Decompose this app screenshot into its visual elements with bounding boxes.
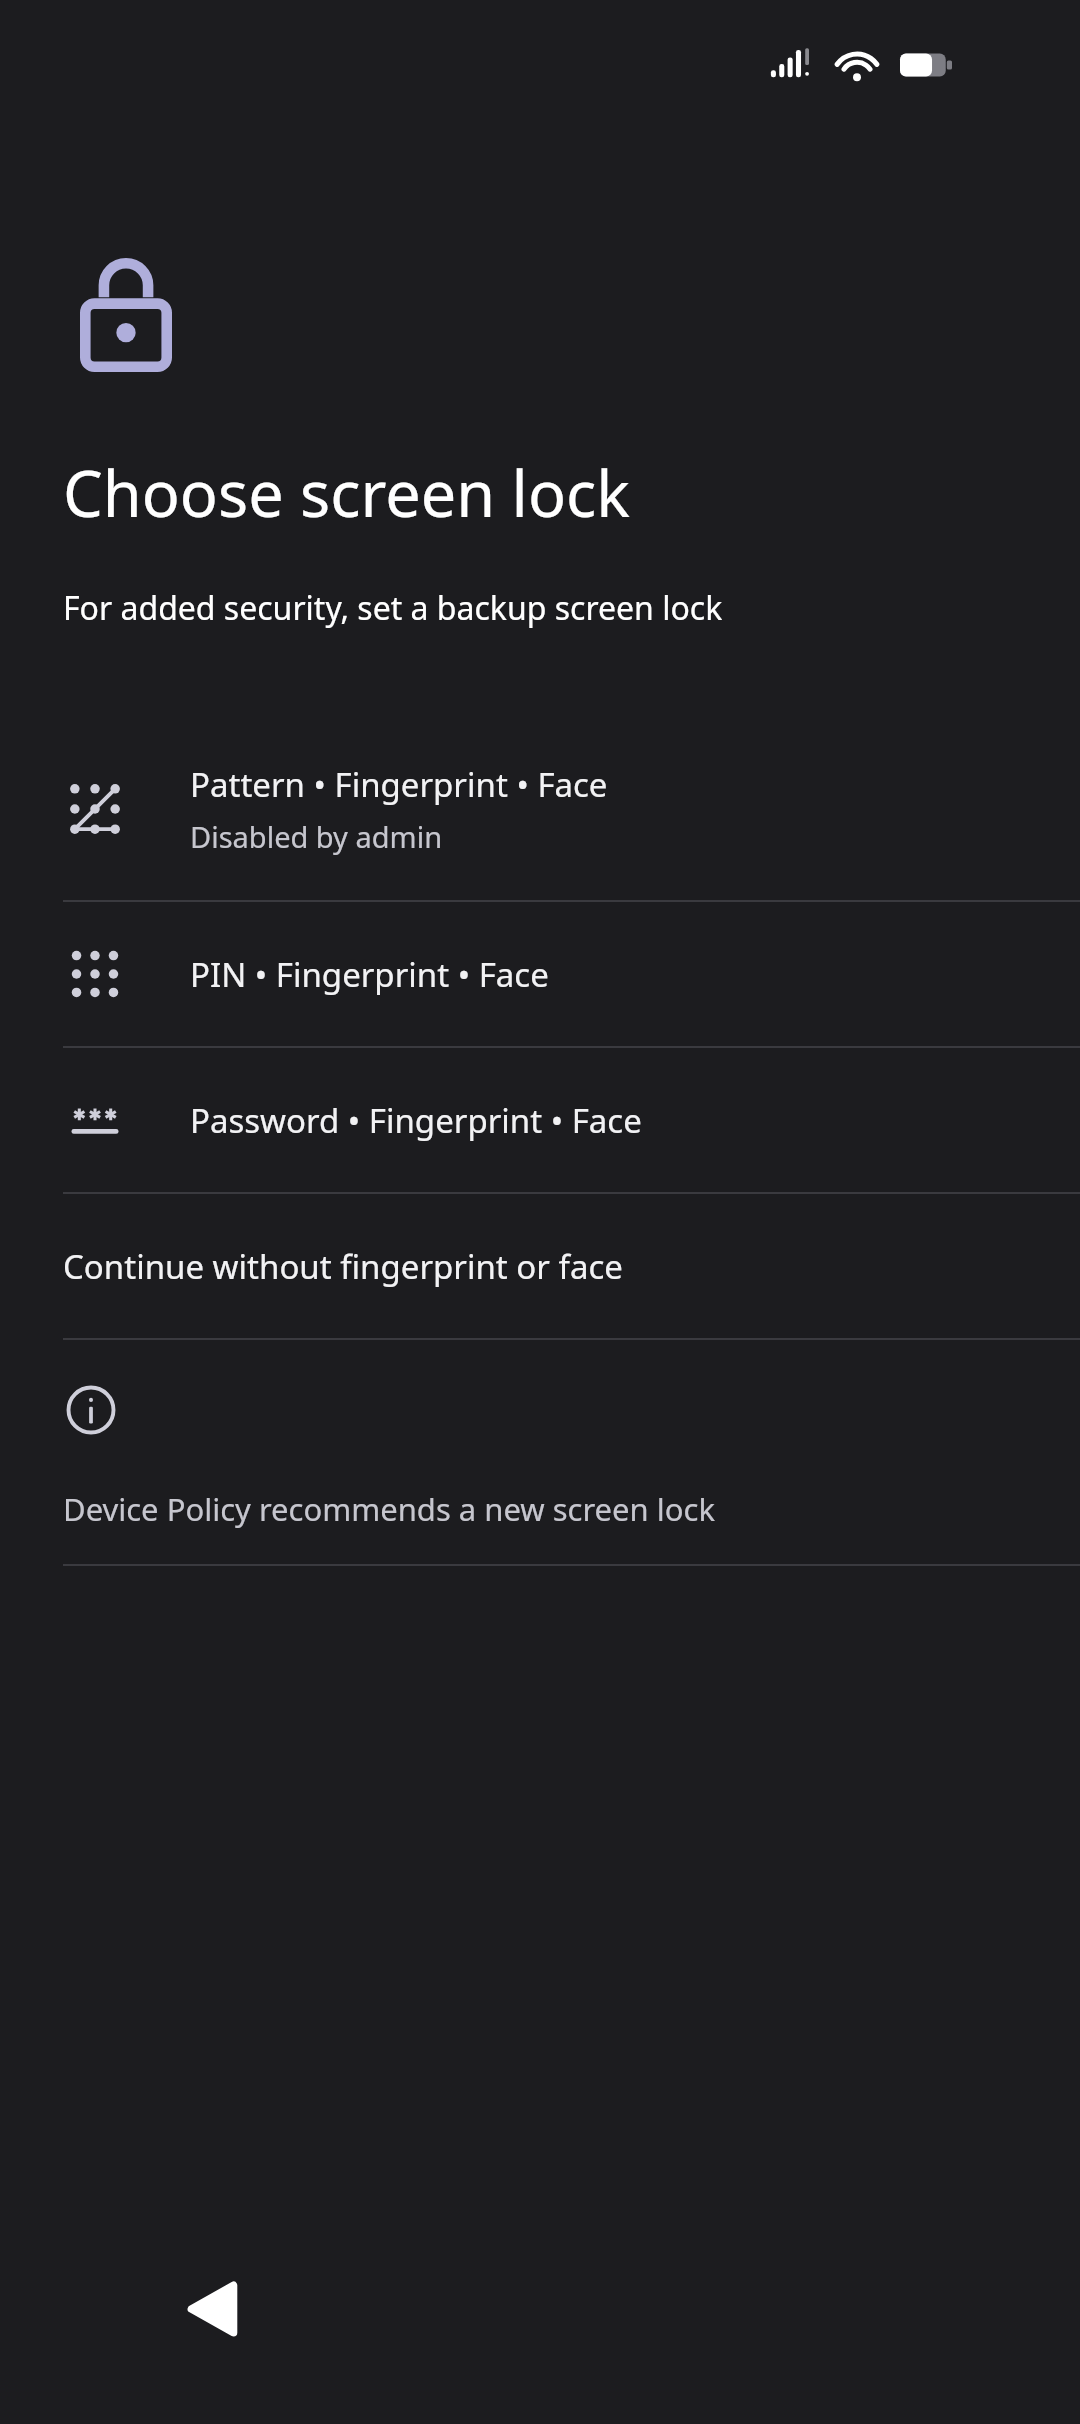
staticText: Pattern • Fingerprint • Face — [190, 762, 608, 807]
staticText: PIN • Fingerprint • Face — [190, 952, 549, 997]
staticText: Device Policy recommends a new screen lo… — [63, 1488, 715, 1530]
staticText: Password • Fingerprint • Face — [190, 1098, 642, 1143]
button[interactable]: PIN • Fingerprint • Face — [0, 902, 1080, 1046]
other: Information — [65, 1384, 117, 1436]
button[interactable]: Back — [168, 2264, 258, 2354]
staticText: For added security, set a backup screen … — [63, 586, 723, 630]
staticText: Continue without fingerprint or face — [63, 1244, 623, 1289]
staticText: Disabled by admin — [190, 817, 443, 856]
button[interactable]: Pattern • Fingerprint • Face — [0, 718, 1080, 900]
button[interactable]: Continue without fingerprint or face — [0, 1194, 1080, 1338]
staticText: Choose screen lock — [63, 450, 630, 536]
button[interactable]: Password • Fingerprint • Face — [0, 1048, 1080, 1192]
